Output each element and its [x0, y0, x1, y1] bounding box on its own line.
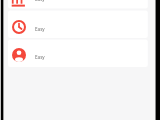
other: Time	[12, 20, 26, 34]
staticText: Easy	[35, 54, 45, 60]
button[interactable]	[8, 10, 148, 38]
button[interactable]	[8, 40, 148, 67]
staticText: Easy	[35, 26, 45, 32]
other: Difficulty	[12, 0, 25, 6]
button[interactable]	[8, 0, 148, 9]
other: Profile	[12, 48, 26, 62]
staticText: Easy	[35, 0, 45, 2]
